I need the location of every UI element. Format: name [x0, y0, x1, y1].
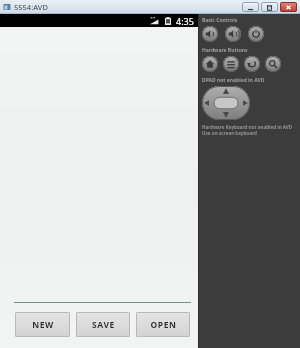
- staticText: NEW: [32, 319, 54, 331]
- staticText: 5554:AVD: [14, 2, 48, 12]
- staticText: Hardware Keyboard not enabled in AVD Use…: [202, 124, 293, 136]
- staticText: Basic Controls: [202, 17, 238, 24]
- button[interactable]: Volume down: [202, 26, 218, 42]
- button[interactable]: Search: [265, 56, 281, 72]
- button[interactable]: Close: [280, 2, 297, 12]
- button[interactable]: D-pad: [202, 86, 250, 120]
- staticText: OPEN: [150, 319, 177, 331]
- staticText: SAVE: [92, 319, 115, 331]
- button[interactable]: Menu: [223, 56, 239, 72]
- button[interactable]: Home: [202, 56, 218, 72]
- button[interactable]: Volume up: [225, 26, 241, 42]
- button[interactable]: Back: [244, 56, 260, 72]
- staticText: 4:35: [176, 15, 194, 27]
- button[interactable]: Minimize: [242, 2, 259, 12]
- button[interactable]: OPEN: [136, 312, 190, 337]
- button[interactable]: Power: [248, 26, 264, 42]
- button[interactable]: SAVE: [76, 312, 130, 337]
- button[interactable]: Maximize: [261, 2, 278, 12]
- button[interactable]: NEW: [15, 312, 70, 337]
- staticText: DPAD not enabled in AVD: [202, 77, 265, 84]
- staticText: Hardware Buttons: [202, 47, 248, 54]
